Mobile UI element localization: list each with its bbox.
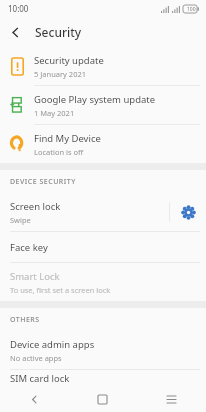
staticText: To use, first set a screen lock xyxy=(10,285,111,295)
staticText: Find My Device xyxy=(34,132,101,145)
staticText: OTHERS xyxy=(10,315,40,325)
staticText: 100 xyxy=(187,6,196,13)
staticText: 10:00 xyxy=(8,3,29,14)
staticText: Security update xyxy=(34,54,104,67)
staticText: Device admin apps xyxy=(10,338,95,351)
button[interactable]: Back xyxy=(0,17,30,47)
button[interactable]: Recent apps xyxy=(137,386,206,412)
staticText: Security xyxy=(35,24,82,40)
button[interactable]: Home xyxy=(68,386,137,412)
button[interactable]: Face key xyxy=(0,232,206,262)
staticText: 1 May 2021 xyxy=(34,108,75,118)
staticText: Screen lock xyxy=(10,200,61,213)
button[interactable]: Screen lock settings xyxy=(170,193,206,231)
button[interactable]: SIM card lock xyxy=(0,370,206,386)
staticText: 5 January 2021 xyxy=(34,69,87,79)
button[interactable]: Smart Lock xyxy=(0,263,206,301)
button[interactable]: Google Play system update xyxy=(0,86,206,124)
staticText: DEVICE SECURITY xyxy=(10,177,76,187)
button[interactable]: Find My Device xyxy=(0,125,206,163)
staticText: Google Play system update xyxy=(34,93,156,106)
button[interactable]: Device admin apps xyxy=(0,331,206,369)
button[interactable]: Back xyxy=(0,386,68,412)
button[interactable]: Screen lock xyxy=(0,193,206,231)
button[interactable]: Security update xyxy=(0,47,206,85)
staticText: Face key xyxy=(10,241,48,254)
staticText: Location is off xyxy=(34,147,84,157)
staticText: Swipe xyxy=(10,215,31,225)
staticText: No active apps xyxy=(10,353,62,363)
staticText: SIM card lock xyxy=(10,372,70,385)
staticText: Smart Lock xyxy=(10,270,60,283)
